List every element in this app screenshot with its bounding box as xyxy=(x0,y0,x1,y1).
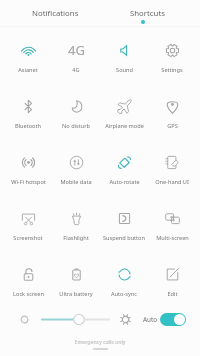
staticText: Bluetooth xyxy=(15,122,41,130)
staticText: Mobile data xyxy=(60,178,92,186)
staticText: Multi-screen xyxy=(156,234,189,242)
staticText: 4G xyxy=(72,66,80,74)
staticText: One-hand UI xyxy=(155,178,189,186)
button[interactable]: Auto-sync xyxy=(100,252,148,308)
button[interactable]: Notifications xyxy=(9,0,101,26)
button[interactable]: Bluetooth xyxy=(4,84,52,140)
button[interactable]: Multi-screen xyxy=(148,196,196,252)
staticText: Airplane mode xyxy=(105,122,144,130)
staticText: Auto-rotate xyxy=(109,178,140,186)
staticText: No disturb xyxy=(62,122,90,130)
staticText: Sound xyxy=(116,66,133,74)
staticText: 4G xyxy=(68,41,85,59)
staticText: Settings xyxy=(161,66,183,74)
button[interactable]: Asianet xyxy=(4,28,52,84)
button[interactable]: Auto brightness toggle xyxy=(160,313,186,326)
button[interactable]: No disturb xyxy=(52,84,100,140)
staticText: Ultra battery xyxy=(59,290,93,298)
button[interactable]: Edit xyxy=(148,252,196,308)
staticText: Auto xyxy=(143,315,158,324)
button[interactable]: Screenshot xyxy=(4,196,52,252)
staticText: Emergency calls only xyxy=(0,338,200,345)
button[interactable]: Mobile data xyxy=(52,140,100,196)
button[interactable]: Settings xyxy=(148,28,196,84)
button[interactable]: Shortcuts xyxy=(101,0,193,26)
staticText: Edit xyxy=(167,290,178,298)
button[interactable] xyxy=(41,313,110,326)
button[interactable]: Flashlight xyxy=(52,196,100,252)
other: High brightness xyxy=(118,312,133,327)
button[interactable]: Lock screen xyxy=(4,252,52,308)
staticText: Shortcuts xyxy=(130,8,165,19)
staticText: Wi-Fi hotspot xyxy=(11,178,46,186)
button[interactable]: One-hand UI xyxy=(148,140,196,196)
staticText: Notifications xyxy=(32,8,79,19)
button[interactable]: Auto-rotate xyxy=(100,140,148,196)
other: Low brightness xyxy=(18,313,31,326)
staticText: Suspend button xyxy=(103,234,145,242)
staticText: Flashlight xyxy=(63,234,89,242)
staticText: Auto-sync xyxy=(111,290,137,298)
staticText: GPS xyxy=(167,122,178,130)
staticText: Screenshot xyxy=(13,234,43,242)
button[interactable]: Airplane mode xyxy=(100,84,148,140)
button[interactable]: GPS xyxy=(148,84,196,140)
staticText: Lock screen xyxy=(13,290,44,298)
button[interactable]: Ultra battery xyxy=(52,252,100,308)
button[interactable]: Wi-Fi hotspot xyxy=(4,140,52,196)
button[interactable]: Sound xyxy=(100,28,148,84)
staticText: Asianet xyxy=(18,66,38,74)
button[interactable]: Suspend button xyxy=(100,196,148,252)
button[interactable]: 4G xyxy=(52,28,100,84)
